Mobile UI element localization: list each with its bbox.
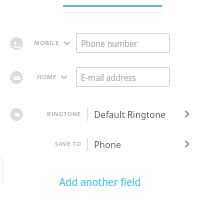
button[interactable]: HOME [30,66,74,88]
button[interactable]: MOBILE [30,32,74,54]
button[interactable]: SAVE TO [0,129,200,159]
staticText: Default Ringtone [94,108,166,120]
button[interactable]: Email [8,69,24,85]
staticText: Phone [94,138,122,150]
button[interactable]: Open RINGTONE picker [178,105,196,123]
staticText: MOBILE [34,39,60,47]
button[interactable]: Phone [8,35,24,51]
button[interactable]: RINGTONE [0,99,200,129]
staticText: HOME [37,73,57,81]
button[interactable]: Open SAVE TO picker [178,135,196,153]
staticText: RINGTONE [47,110,82,118]
staticText: E-mail address [81,72,136,83]
button[interactable]: E-mail address [76,67,170,87]
staticText: Phone number [81,38,138,49]
button[interactable]: Phone number [76,33,170,53]
staticText: SAVE TO [55,140,82,148]
staticText: Add another field [59,175,141,189]
button[interactable]: Add another field [0,171,200,193]
